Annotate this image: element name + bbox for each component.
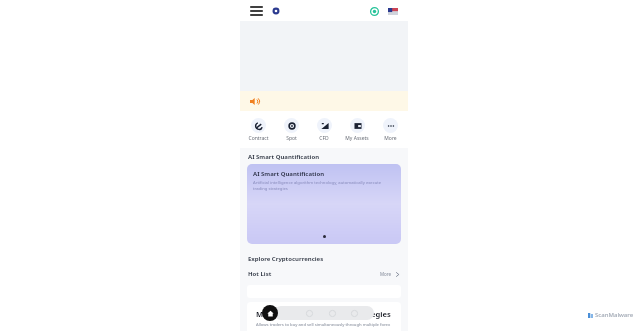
staticText: More	[380, 271, 392, 277]
staticText: Artificial intelligence algorithm techno…	[253, 180, 395, 192]
button[interactable]: Hot List	[240, 266, 408, 282]
staticText: My Assets	[345, 135, 369, 142]
staticText: More	[384, 135, 397, 142]
staticText: Hot List	[248, 270, 272, 278]
button[interactable]	[240, 91, 408, 111]
staticText: AI Smart Quantification	[253, 170, 325, 178]
button[interactable]: Contract	[243, 118, 273, 142]
button[interactable]: Capture	[262, 305, 278, 321]
button[interactable]: Multidimensional trading strategies	[247, 302, 401, 331]
button[interactable]: Customer service	[367, 4, 381, 18]
button[interactable]: Menu	[248, 3, 264, 19]
staticText: Contract	[248, 135, 269, 142]
button[interactable]: Language	[386, 4, 400, 18]
staticText: CFD	[319, 135, 329, 142]
staticText: Allows traders to buy and sell simultane…	[256, 322, 391, 328]
staticText: AI Smart Quantification	[248, 153, 320, 161]
staticText: Explore Cryptocurrencies	[248, 255, 324, 263]
button[interactable]: My Assets	[342, 118, 372, 142]
button[interactable]: More	[375, 118, 405, 142]
staticText: Multidimensional trading strategies	[256, 309, 391, 319]
staticText: ScanMalware	[595, 311, 634, 319]
staticText: Spot	[286, 135, 297, 142]
button[interactable]: Spot	[276, 118, 306, 142]
button[interactable]: AI Smart Quantification	[247, 164, 401, 244]
button[interactable]: Notifications	[269, 4, 283, 18]
button[interactable]: CFD	[309, 118, 339, 142]
